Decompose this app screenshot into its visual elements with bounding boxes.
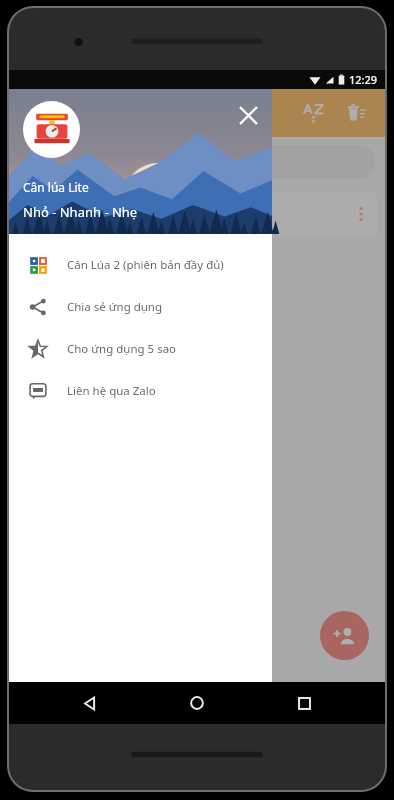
staticText: Cho ứng dụng 5 sao bbox=[67, 341, 177, 357]
button[interactable]: Add person bbox=[320, 611, 369, 660]
staticText: Cân Lúa 2 (phiên bản đầy đủ) bbox=[67, 257, 224, 273]
button[interactable]: App logo bbox=[23, 101, 80, 158]
staticText: Nhỏ - Nhanh - Nhẹ bbox=[23, 203, 138, 221]
button[interactable]: Back bbox=[64, 682, 116, 724]
button[interactable]: Sort A to Z bbox=[291, 91, 335, 135]
button[interactable]: Chia sẻ ứng dụng bbox=[9, 286, 272, 328]
button[interactable]: Close drawer bbox=[228, 95, 268, 135]
button[interactable] bbox=[19, 145, 375, 179]
button[interactable]: Liên hệ qua Zalo bbox=[9, 370, 272, 412]
button[interactable]: Recent apps bbox=[278, 682, 330, 724]
button[interactable]: 12-04-2024 11:2 bbox=[17, 191, 377, 237]
button[interactable]: Delete all bbox=[335, 91, 379, 135]
button[interactable]: Cân Lúa 2 (phiên bản đầy đủ) bbox=[9, 244, 272, 286]
staticText: 12-04-2024 11:2 bbox=[27, 207, 110, 222]
staticText: 12:29 bbox=[349, 72, 378, 87]
staticText: Cân lúa Lite bbox=[23, 179, 89, 195]
button[interactable]: Cho ứng dụng 5 sao bbox=[9, 328, 272, 370]
button[interactable]: Home bbox=[171, 682, 223, 724]
staticText: Chia sẻ ứng dụng bbox=[67, 299, 163, 315]
staticText: Liên hệ qua Zalo bbox=[67, 383, 156, 399]
